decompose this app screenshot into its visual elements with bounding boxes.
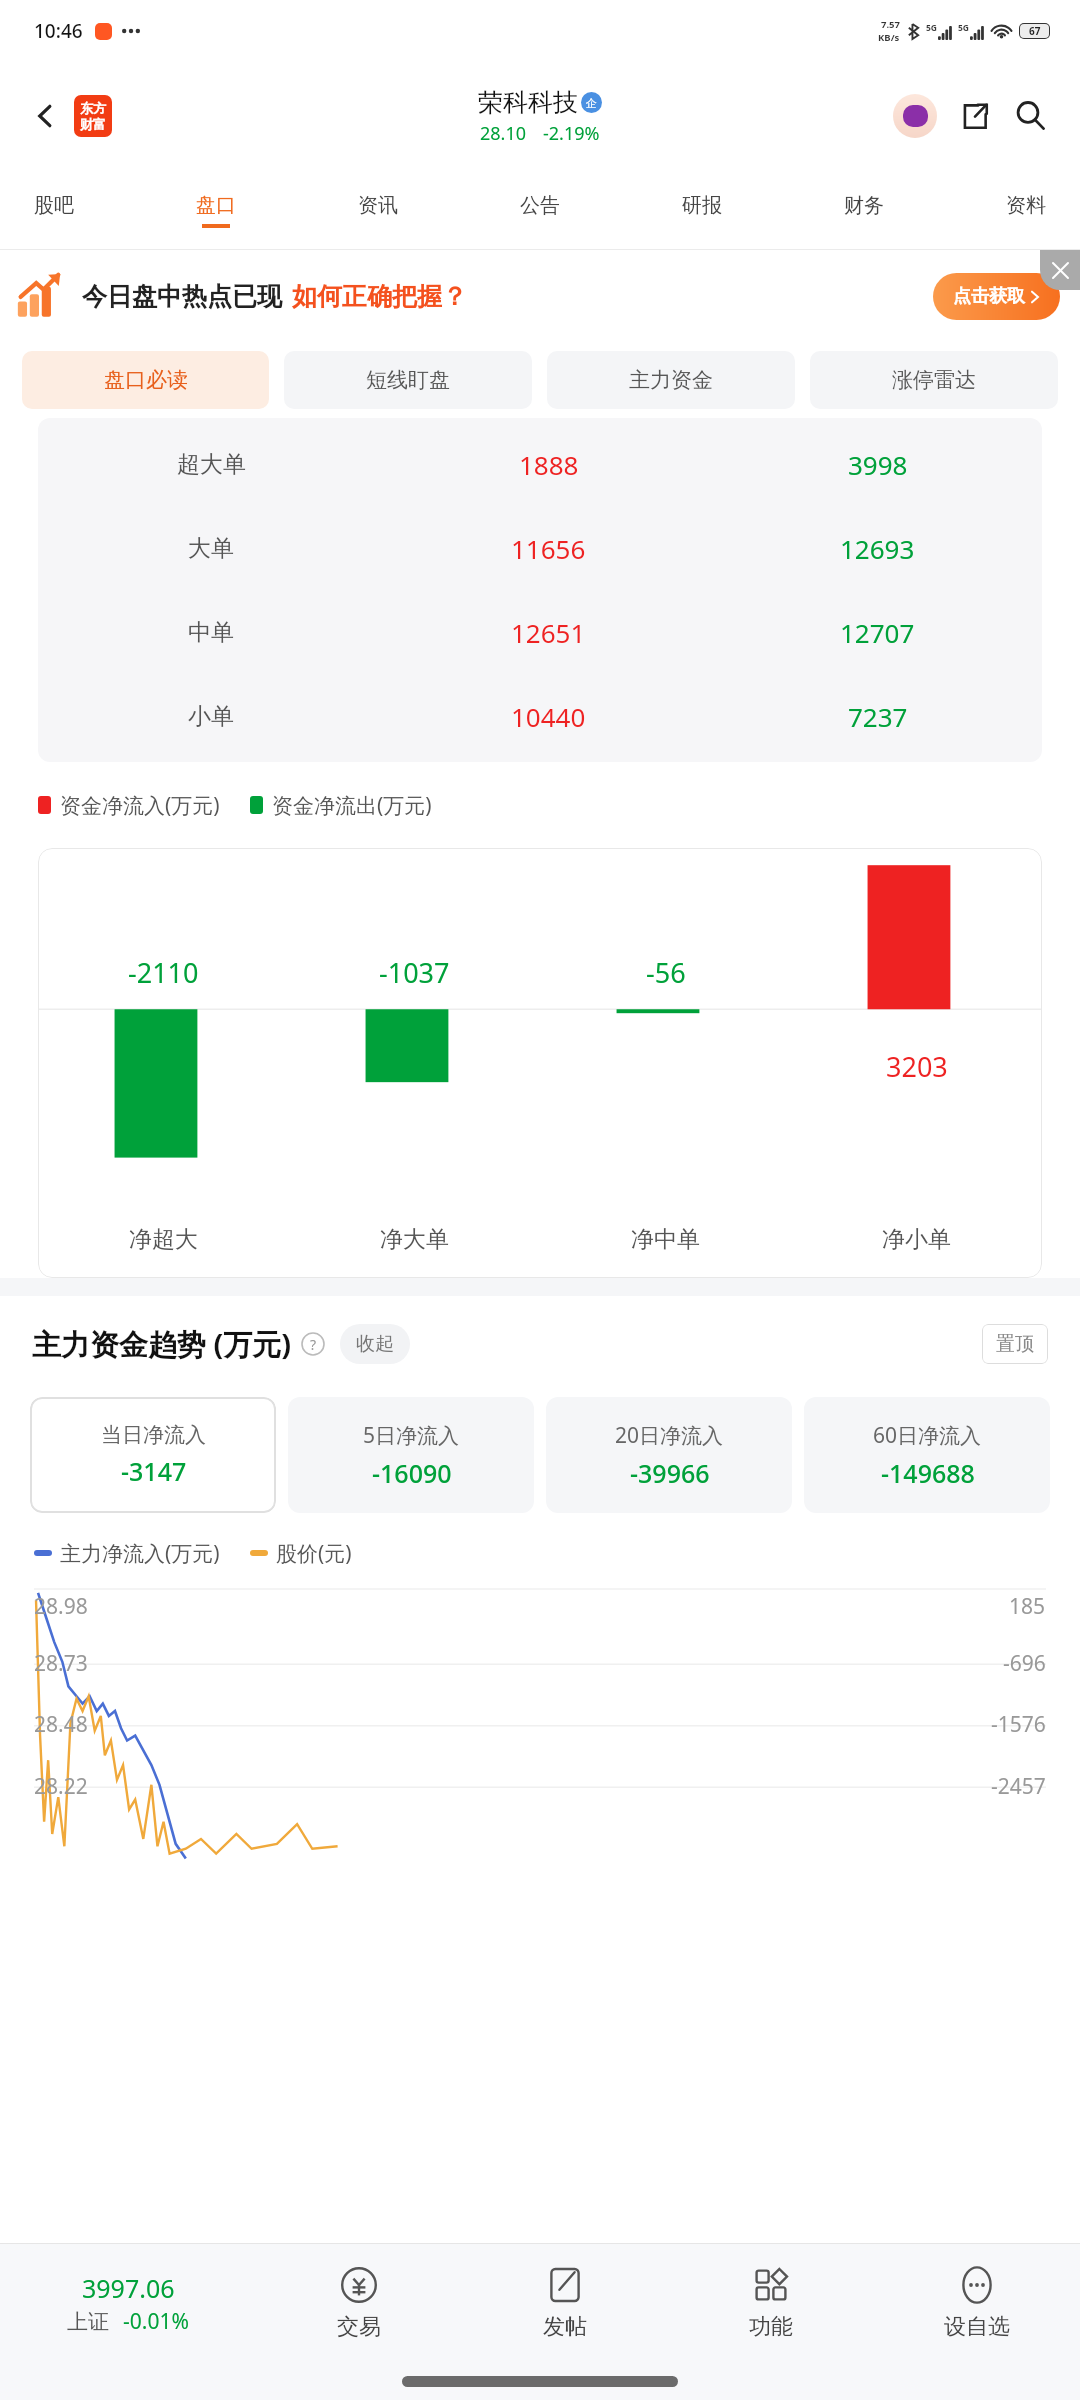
staticText: ? — [310, 1335, 317, 1354]
button[interactable]: 20日净流入 — [546, 1397, 792, 1513]
staticText: 主力资金趋势 (万元) — [32, 1324, 292, 1364]
staticText: 财富 — [80, 116, 106, 132]
button[interactable]: 今日盘中热点已现 — [0, 250, 1080, 342]
staticText: 公告 — [520, 193, 560, 218]
staticText: 股吧 — [34, 193, 74, 218]
button[interactable]: Share — [948, 89, 1002, 143]
staticText: -1576 — [991, 1710, 1046, 1739]
staticText: 小单 — [188, 702, 234, 731]
staticText: 20日净流入 — [615, 1421, 724, 1450]
staticText: 11656 — [511, 531, 586, 566]
staticText: 大单 — [188, 534, 234, 563]
staticText: 盘口必读 — [104, 367, 188, 393]
staticText: 28.48 — [34, 1710, 88, 1739]
staticText: 企 — [586, 96, 597, 110]
staticText: -16090 — [372, 1456, 452, 1490]
staticText: 股价(元) — [276, 1539, 352, 1568]
staticText: 67 — [1029, 24, 1041, 38]
button[interactable]: 5日净流入 — [288, 1397, 534, 1513]
staticText: 当日净流入 — [101, 1422, 206, 1448]
button[interactable]: 置顶 — [982, 1324, 1048, 1364]
staticText: -3147 — [121, 1454, 187, 1488]
staticText: -2457 — [991, 1772, 1046, 1801]
button[interactable]: 盘口 — [184, 185, 248, 236]
staticText: -39966 — [630, 1456, 710, 1490]
button[interactable]: Close — [1040, 250, 1080, 290]
button[interactable]: 股吧 — [22, 185, 86, 236]
staticText: 12693 — [840, 531, 915, 566]
staticText: 28.22 — [34, 1772, 88, 1801]
staticText: 主力资金 — [629, 367, 713, 393]
staticText: -0.01% — [123, 2307, 189, 2336]
staticText: 7237 — [848, 699, 908, 734]
staticText: 主力净流入(万元) — [60, 1539, 220, 1568]
button[interactable]: 设自选 — [874, 2244, 1080, 2362]
button[interactable]: 当日净流入 — [30, 1397, 276, 1513]
staticText: 净大单 — [380, 1225, 449, 1254]
staticText: 5日净流入 — [363, 1421, 460, 1450]
staticText: KB/s — [878, 31, 900, 44]
staticText: 上证 — [67, 2309, 109, 2335]
staticText: 3203 — [886, 1048, 948, 1085]
button[interactable]: 3997.06 — [0, 2271, 256, 2336]
staticText: 净小单 — [882, 1225, 951, 1254]
staticText: 60日净流入 — [873, 1421, 982, 1450]
staticText: 5G — [958, 22, 970, 34]
staticText: 交易 — [337, 2313, 381, 2341]
button[interactable]: Assistant — [888, 89, 942, 143]
staticText: 财务 — [844, 193, 884, 218]
button[interactable]: 收起 — [340, 1324, 410, 1364]
staticText: 东方 — [80, 100, 106, 116]
staticText: 28.10 — [480, 121, 527, 146]
staticText: -56 — [646, 954, 686, 991]
staticText: 7.57 — [881, 18, 900, 31]
button[interactable]: 研报 — [670, 185, 734, 236]
staticText: 资金净流入(万元) — [60, 791, 220, 820]
staticText: 点击获取 — [953, 285, 1025, 308]
staticText: 净中单 — [631, 1225, 700, 1254]
staticText: 12707 — [840, 615, 915, 650]
staticText: 涨停雷达 — [892, 367, 976, 393]
staticText: 1888 — [519, 447, 579, 482]
button[interactable]: 东方财富 — [74, 95, 112, 137]
staticText: 10:46 — [34, 18, 83, 44]
staticText: 净超大 — [129, 1225, 198, 1254]
button[interactable]: Search — [1004, 89, 1058, 143]
button[interactable]: 财务 — [832, 185, 896, 236]
button[interactable]: Help — [300, 1331, 326, 1357]
staticText: 资讯 — [358, 193, 398, 218]
staticText: 盘口 — [196, 193, 236, 218]
button[interactable]: 功能 — [668, 2244, 874, 2362]
staticText: 收起 — [356, 1332, 394, 1356]
staticText: -2110 — [128, 954, 199, 991]
staticText: 3997.06 — [82, 2271, 175, 2305]
button[interactable]: 资讯 — [346, 185, 410, 236]
button[interactable]: Back — [20, 91, 70, 141]
staticText: 如何正确把握？ — [292, 281, 467, 312]
staticText: 28.98 — [34, 1592, 88, 1621]
staticText: -696 — [1003, 1649, 1046, 1678]
staticText: 研报 — [682, 193, 722, 218]
button[interactable]: 60日净流入 — [804, 1397, 1050, 1513]
staticText: -149688 — [881, 1456, 975, 1490]
staticText: -2.19% — [543, 121, 600, 146]
button[interactable]: 盘口必读 — [22, 351, 269, 409]
button[interactable]: 公告 — [508, 185, 572, 236]
button[interactable]: 发帖 — [462, 2244, 668, 2362]
staticText: 中单 — [188, 618, 234, 647]
button[interactable]: 涨停雷达 — [810, 351, 1058, 409]
staticText: 设自选 — [944, 2313, 1010, 2341]
button[interactable]: 主力资金 — [547, 351, 795, 409]
staticText: 资料 — [1006, 193, 1046, 218]
button[interactable]: 点击获取 — [933, 273, 1060, 320]
staticText: 3998 — [848, 447, 908, 482]
staticText: 发帖 — [543, 2313, 587, 2341]
button[interactable]: 短线盯盘 — [284, 351, 532, 409]
staticText: 10440 — [511, 699, 586, 734]
staticText: 短线盯盘 — [366, 367, 450, 393]
button[interactable]: 交易 — [256, 2244, 462, 2362]
staticText: 资金净流出(万元) — [272, 791, 432, 820]
button[interactable]: 资料 — [994, 185, 1058, 236]
staticText: 置顶 — [996, 1332, 1034, 1356]
staticText: 今日盘中热点已现 — [82, 281, 282, 312]
